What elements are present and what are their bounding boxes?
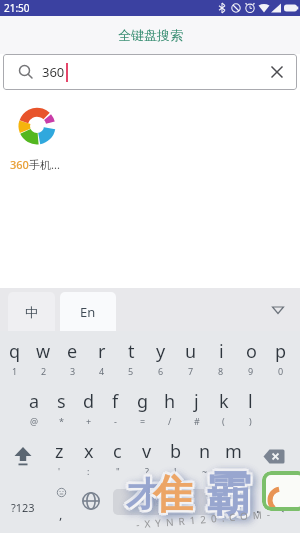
staticText: 1 <box>12 365 18 377</box>
staticText: ! <box>174 465 177 477</box>
staticText: 0 <box>278 365 284 377</box>
button[interactable] <box>76 481 106 533</box>
staticText: En <box>80 303 96 321</box>
staticText: 才 <box>126 476 160 519</box>
staticText: y <box>156 339 166 364</box>
staticText: 霸 <box>208 466 254 524</box>
button[interactable]: b <box>161 439 190 481</box>
staticText: . <box>256 498 260 517</box>
button[interactable]: English <box>113 489 247 515</box>
staticText: k <box>219 389 229 414</box>
staticText: 360 <box>42 63 65 81</box>
staticText: ) <box>249 415 252 427</box>
button[interactable]: , <box>46 481 76 533</box>
staticText: 9 <box>248 365 254 377</box>
button[interactable]: w <box>29 339 58 381</box>
staticText: m <box>225 439 242 464</box>
button[interactable]: ?123 <box>0 481 46 533</box>
button[interactable]: e <box>58 339 87 381</box>
staticText: " <box>116 465 120 477</box>
button[interactable]: 360 <box>10 157 60 172</box>
staticText: 霸 <box>207 464 253 522</box>
staticText: 全键盘搜索 <box>118 27 183 43</box>
staticText: + <box>86 415 92 427</box>
staticText: / <box>168 415 172 427</box>
staticText: 3 <box>70 365 76 377</box>
button[interactable]: d <box>75 389 102 431</box>
staticText: 才 <box>129 473 163 516</box>
staticText: 6 <box>158 365 164 377</box>
staticText: d <box>83 389 95 414</box>
staticText: u <box>185 339 197 364</box>
staticText: 8 <box>218 365 224 377</box>
staticText: 霸 <box>205 463 251 521</box>
staticText: s <box>57 389 66 414</box>
button[interactable]: p <box>266 339 296 381</box>
button[interactable]: j <box>183 389 210 431</box>
staticText: v <box>142 439 152 464</box>
staticText: 隹 <box>155 467 195 517</box>
staticText: 才 <box>128 471 162 514</box>
staticText: p <box>275 339 287 364</box>
button[interactable]: k <box>210 389 237 431</box>
staticText: ~ <box>202 465 208 477</box>
staticText: 隹 <box>153 472 193 522</box>
staticText: 2 <box>41 365 47 377</box>
button[interactable]: o <box>236 339 266 381</box>
button[interactable]: . <box>247 481 269 533</box>
button[interactable] <box>0 431 45 481</box>
staticText: - <box>114 415 117 427</box>
button[interactable]: x <box>74 439 103 481</box>
staticText: z <box>55 439 64 464</box>
staticText: ? <box>145 465 149 477</box>
staticText: 才 <box>128 475 162 518</box>
button[interactable]: s <box>48 389 75 431</box>
button[interactable]: c <box>103 439 132 481</box>
staticText: e <box>67 339 78 364</box>
button[interactable]: 360 <box>3 54 297 90</box>
staticText: 才 <box>124 471 158 514</box>
staticText: 霸 <box>205 469 251 527</box>
button[interactable]: r <box>87 339 116 381</box>
staticText: @ <box>30 415 39 427</box>
staticText: c <box>113 439 122 464</box>
staticText: 才 <box>123 473 157 516</box>
staticText: 隹 <box>153 469 193 519</box>
staticText: 手机... <box>29 157 60 172</box>
button[interactable] <box>248 431 300 481</box>
staticText: o <box>246 339 257 364</box>
staticText: q <box>9 339 21 364</box>
staticText: j <box>194 389 199 414</box>
staticText: 霸 <box>202 466 248 524</box>
staticText: 霸 <box>203 464 249 522</box>
staticText: i <box>219 339 224 364</box>
staticText: 霸 <box>203 468 249 526</box>
staticText: 才 <box>126 473 160 516</box>
staticText: - <box>232 465 235 477</box>
button[interactable]: h <box>156 389 183 431</box>
button[interactable]: En <box>60 292 116 331</box>
button[interactable]: l <box>237 389 264 431</box>
button[interactable]: m <box>219 439 248 481</box>
button[interactable]: g <box>129 389 156 431</box>
staticText: 才 <box>126 470 160 513</box>
staticText: ( <box>222 415 225 427</box>
button[interactable]: q <box>0 339 29 381</box>
button[interactable]: f <box>102 389 129 431</box>
staticText: h <box>164 389 176 414</box>
staticText: English <box>135 496 166 508</box>
button[interactable]: u <box>176 339 206 381</box>
button[interactable] <box>269 481 300 533</box>
button[interactable]: n <box>190 439 219 481</box>
button[interactable]: 中 <box>8 292 55 331</box>
button[interactable]: i <box>206 339 236 381</box>
staticText: # <box>194 415 200 427</box>
button[interactable]: a <box>21 389 48 431</box>
button[interactable]: t <box>116 339 146 381</box>
staticText: w <box>36 339 51 364</box>
button[interactable]: y <box>146 339 176 381</box>
button[interactable]: v <box>132 439 161 481</box>
staticText: x <box>84 439 94 464</box>
staticText: 霸 <box>207 468 253 526</box>
button[interactable]: z <box>45 439 74 481</box>
